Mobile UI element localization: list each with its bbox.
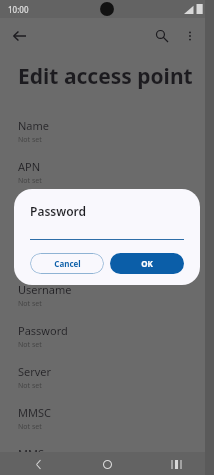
staticText: Not set bbox=[18, 422, 42, 432]
button[interactable]: Port bbox=[0, 234, 214, 275]
button[interactable]: More options bbox=[178, 24, 202, 48]
staticText: Not set bbox=[18, 340, 42, 350]
staticText: Not set bbox=[18, 299, 42, 309]
button[interactable]: Username bbox=[0, 275, 214, 316]
staticText: Not set bbox=[18, 381, 42, 391]
staticText: Password bbox=[18, 323, 68, 338]
button[interactable]: Back bbox=[6, 23, 32, 49]
staticText: Server bbox=[18, 364, 52, 379]
staticText: Proxy bbox=[18, 200, 47, 215]
button[interactable]: Password bbox=[0, 316, 214, 357]
button[interactable]: Home bbox=[97, 454, 117, 474]
staticText: Edit access point bbox=[18, 62, 193, 91]
staticText: MMS proxy bbox=[18, 446, 76, 461]
staticText: APN bbox=[18, 159, 41, 174]
button[interactable]: MMSC bbox=[0, 398, 214, 439]
button[interactable]: MMS proxy bbox=[0, 439, 214, 475]
staticText: Not set bbox=[18, 258, 42, 268]
staticText: Not set bbox=[18, 176, 42, 186]
staticText: Name bbox=[18, 118, 50, 133]
staticText: 10:00 bbox=[8, 4, 29, 15]
button[interactable]: Proxy bbox=[0, 193, 214, 234]
button[interactable]: Server bbox=[0, 357, 214, 398]
staticText: Port bbox=[18, 241, 40, 256]
staticText: Not set bbox=[18, 463, 42, 468]
staticText: Not set bbox=[18, 135, 42, 145]
button[interactable]: APN bbox=[0, 152, 214, 193]
staticText: MMSC bbox=[18, 405, 51, 420]
staticText: OK bbox=[141, 258, 153, 269]
button[interactable]: OK bbox=[110, 253, 184, 274]
staticText: Password bbox=[30, 203, 87, 219]
staticText: Username bbox=[18, 282, 72, 297]
button[interactable]: Back bbox=[28, 454, 48, 474]
button[interactable]: Search bbox=[150, 24, 174, 48]
button[interactable]: Recent apps bbox=[166, 454, 186, 474]
button[interactable]: Cancel bbox=[30, 253, 104, 274]
staticText: Cancel bbox=[54, 258, 81, 269]
button[interactable]: Name bbox=[0, 111, 214, 152]
